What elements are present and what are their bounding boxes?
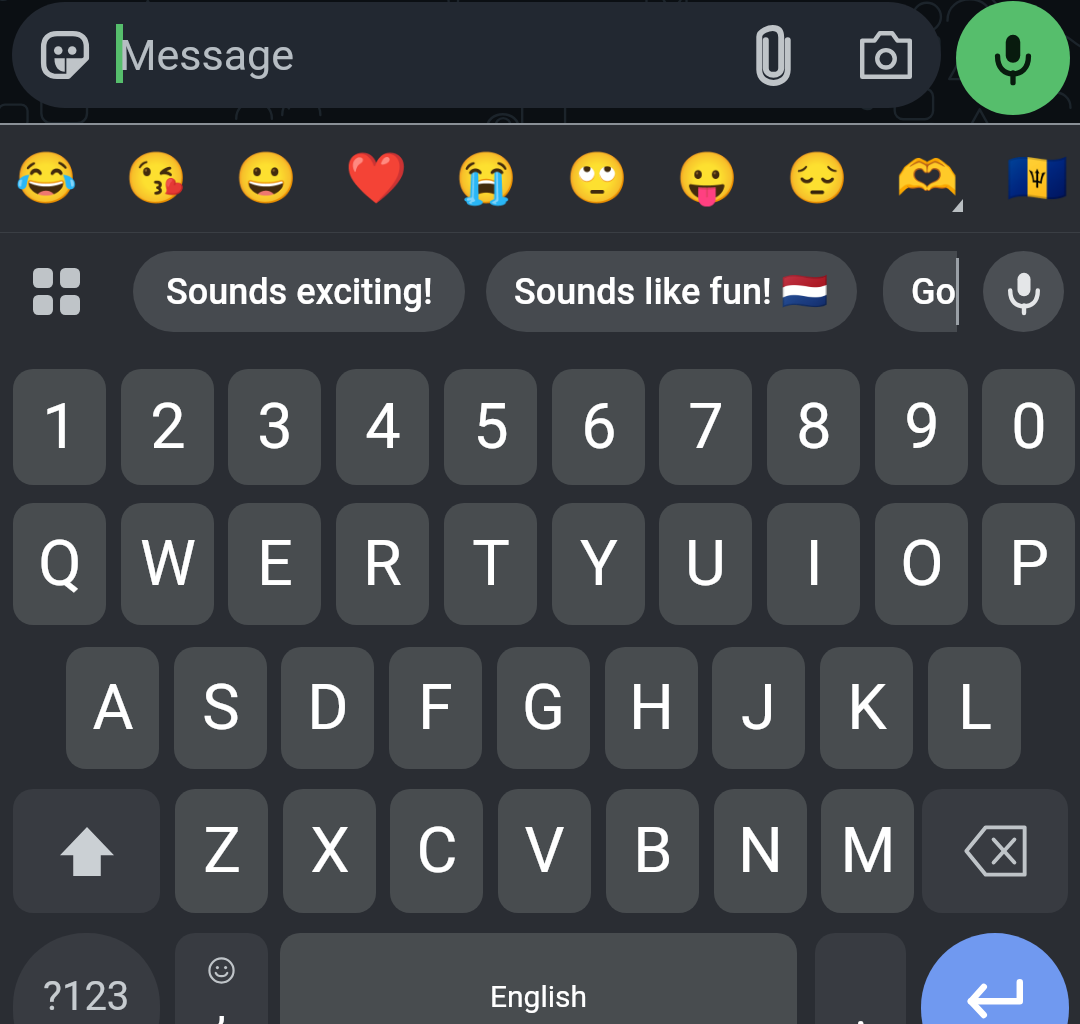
button[interactable]: Sounds exciting! [133,251,465,332]
button[interactable]: 2 [121,369,214,485]
button[interactable]: K [820,647,913,769]
staticText: W [140,527,196,601]
staticText: 7 [688,390,724,464]
button[interactable]: N [714,789,807,913]
button[interactable]: 😭 [434,125,538,232]
button[interactable]: 😛 [655,125,759,232]
button[interactable]: 4 [336,369,429,485]
staticText: 8 [796,390,832,464]
staticText: X [310,814,350,888]
button[interactable]: Emoji and comma [175,933,268,1024]
staticText: English [490,979,588,1014]
button[interactable]: I [767,503,860,625]
staticText: D [307,671,349,745]
staticText: Sounds like fun! [514,271,781,313]
button[interactable]: Y [552,503,645,625]
staticText: 2 [150,390,186,464]
button[interactable]: 5 [444,369,537,485]
button[interactable]: 😘 [104,125,208,232]
staticText: I [805,527,823,601]
staticText: Q [38,527,82,601]
button[interactable]: B [606,789,699,913]
button[interactable]: Attach [738,20,808,90]
button[interactable]: 😀 [214,125,318,232]
button[interactable]: O [875,503,968,625]
staticText: 0 [1011,390,1047,464]
staticText: O [900,527,944,601]
button[interactable]: W [121,503,214,625]
staticText: T [472,527,510,601]
staticText: 😘 [125,149,188,208]
button[interactable]: ?123 [13,933,160,1024]
button[interactable]: H [605,647,698,769]
staticText: N [738,814,783,888]
button[interactable]: Enter [921,933,1069,1024]
button[interactable]: U [659,503,752,625]
button[interactable]: Record voice message [956,1,1070,115]
button[interactable]: 🙄 [545,125,649,232]
staticText: K [847,671,887,745]
button[interactable]: L [928,647,1021,769]
button[interactable]: D [281,647,374,769]
staticText: 😔 [786,149,849,208]
button[interactable]: 0 [982,369,1075,485]
button[interactable]: 😂 [0,125,98,232]
button[interactable]: 6 [552,369,645,485]
button[interactable]: 😔 [765,125,869,232]
staticText: C [416,814,458,888]
button[interactable]: 1 [13,369,106,485]
button[interactable]: M [821,789,914,913]
button[interactable]: C [390,789,483,913]
staticText: E [257,527,293,601]
staticText: 😛 [676,149,739,208]
button[interactable]: P [982,503,1075,625]
button[interactable]: X [283,789,376,913]
button[interactable]: J [712,647,805,769]
staticText: V [524,814,565,888]
button[interactable]: 7 [659,369,752,485]
staticText: 9 [904,390,940,464]
staticText: Go [911,271,957,313]
staticText: Message [119,30,295,80]
staticText: 😀 [235,149,298,208]
button[interactable]: S [174,647,267,769]
button[interactable]: Stickers [12,2,941,108]
button[interactable]: Camera [851,20,921,90]
button[interactable]: 8 [767,369,860,485]
button[interactable]: Open toolbar [20,255,92,327]
button[interactable]: V [498,789,591,913]
staticText: A [92,671,134,745]
button[interactable]: Sounds like fun! [486,251,857,332]
button[interactable]: F [389,647,482,769]
staticText: ?123 [43,973,130,1020]
button[interactable]: G [497,647,590,769]
button[interactable]: E [228,503,321,625]
button[interactable]: Backspace [922,789,1068,913]
button[interactable]: English [280,933,797,1024]
button[interactable]: T [444,503,537,625]
button[interactable]: Voice input [983,251,1064,332]
button[interactable]: 🇧🇧 [985,125,1080,232]
button[interactable]: R [336,503,429,625]
button[interactable]: A [66,647,159,769]
staticText: L [958,671,992,745]
button[interactable]: 🫶 [875,125,979,232]
button[interactable]: 9 [875,369,968,485]
button[interactable]: 3 [228,369,321,485]
staticText: Sounds exciting! [166,271,433,313]
staticText: ❤️ [345,149,408,208]
staticText: S [202,671,240,745]
button[interactable]: ❤️ [324,125,428,232]
staticText: M [840,814,896,888]
button[interactable]: Z [175,789,268,913]
staticText: 😭 [455,149,518,208]
staticText: J [741,671,776,745]
staticText: 🫶 [896,149,959,208]
button[interactable]: Q [13,503,106,625]
staticText: P [1009,527,1049,601]
staticText: U [685,527,726,601]
button[interactable]: . [815,933,906,1024]
button[interactable]: Go [883,251,957,332]
button[interactable]: Stickers [38,28,92,82]
button[interactable]: Shift [13,789,160,913]
